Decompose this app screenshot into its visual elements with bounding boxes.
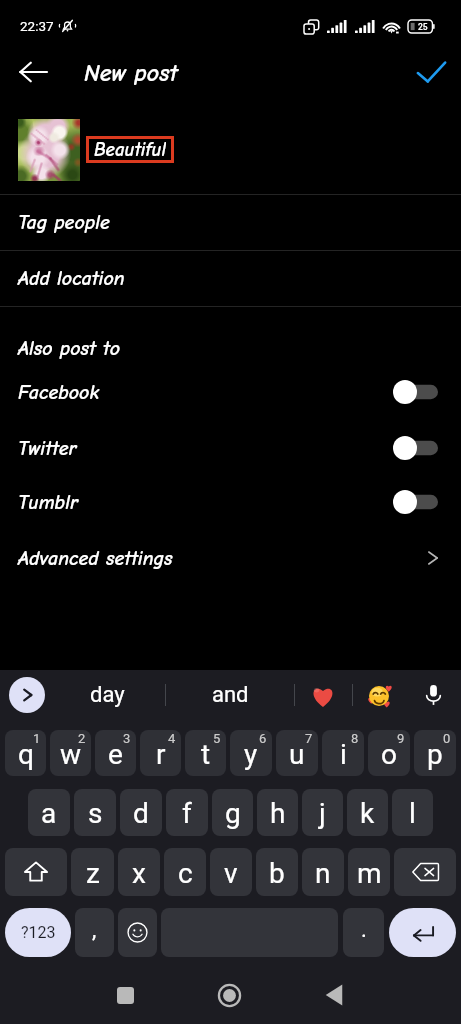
- staticText: day: [90, 682, 125, 708]
- staticText: Add location: [18, 267, 125, 290]
- button[interactable]: v: [210, 848, 252, 896]
- button[interactable]: Heart emoji: [304, 677, 341, 714]
- staticText: j: [319, 797, 326, 830]
- staticText: l: [409, 797, 416, 830]
- button[interactable]: j: [302, 789, 343, 836]
- staticText: i: [340, 738, 347, 771]
- staticText: 0: [443, 731, 451, 746]
- staticText: z: [86, 857, 100, 890]
- button[interactable]: i: [322, 730, 364, 776]
- button[interactable]: h: [257, 789, 298, 836]
- button[interactable]: Backspace: [394, 848, 456, 896]
- staticText: v: [224, 857, 238, 890]
- staticText: u: [289, 738, 305, 771]
- button[interactable]: ,: [75, 908, 114, 957]
- staticText: w: [60, 738, 82, 771]
- button[interactable]: Back: [11, 50, 55, 94]
- staticText: o: [381, 738, 397, 771]
- button[interactable]: p: [414, 730, 456, 776]
- button[interactable]: e: [95, 730, 136, 776]
- button[interactable]: n: [302, 848, 344, 896]
- staticText: Tumblr: [18, 491, 78, 514]
- button[interactable]: z: [71, 848, 114, 896]
- staticText: k: [360, 797, 375, 830]
- staticText: Beautiful: [94, 139, 166, 160]
- staticText: 22:37: [20, 18, 54, 34]
- button[interactable]: Recent apps: [85, 973, 165, 1017]
- staticText: 2: [78, 731, 86, 746]
- staticText: a: [41, 797, 57, 830]
- button[interactable]: Also post to: [0, 320, 461, 376]
- button[interactable]: c: [164, 848, 206, 896]
- staticText: 9: [397, 731, 405, 746]
- button[interactable]: a: [28, 789, 70, 836]
- button[interactable]: Beautiful: [89, 139, 171, 160]
- staticText: r: [156, 738, 166, 771]
- staticText: ,: [92, 917, 97, 943]
- button[interactable]: o: [368, 730, 410, 776]
- button[interactable]: Shift: [5, 848, 67, 896]
- button[interactable]: d: [120, 789, 162, 836]
- staticText: 5: [213, 731, 221, 746]
- staticText: 6: [259, 731, 267, 746]
- button[interactable]: r: [140, 730, 181, 776]
- button[interactable]: Share post: [409, 50, 453, 94]
- button[interactable]: u: [276, 730, 318, 776]
- button[interactable]: t: [185, 730, 226, 776]
- button[interactable]: x: [118, 848, 160, 896]
- button[interactable]: g: [212, 789, 253, 836]
- button[interactable]: Advanced settings: [0, 530, 461, 586]
- staticText: Tag people: [18, 211, 110, 234]
- button[interactable]: Tumblr: [0, 474, 461, 530]
- staticText: q: [18, 738, 34, 771]
- staticText: x: [132, 857, 146, 890]
- button[interactable]: l: [392, 789, 433, 836]
- staticText: f: [182, 797, 192, 830]
- button[interactable]: Home: [189, 973, 269, 1017]
- button[interactable]: y: [230, 730, 272, 776]
- button[interactable]: k: [347, 789, 388, 836]
- button[interactable]: ?123: [5, 908, 71, 957]
- button[interactable]: Back: [294, 973, 374, 1017]
- button[interactable]: b: [256, 848, 298, 896]
- staticText: 1: [33, 731, 41, 746]
- button[interactable]: Voice input: [415, 677, 451, 713]
- staticText: .: [361, 917, 367, 943]
- staticText: s: [88, 797, 103, 830]
- staticText: and: [212, 682, 249, 708]
- staticText: 3: [123, 731, 131, 746]
- staticText: y: [244, 738, 258, 771]
- button[interactable]: [18, 119, 80, 181]
- button[interactable]: Tag people: [0, 195, 461, 250]
- staticText: d: [133, 797, 149, 830]
- button[interactable]: More suggestions: [9, 677, 45, 713]
- staticText: 7: [305, 731, 313, 746]
- button[interactable]: day: [57, 670, 157, 720]
- staticText: Facebook: [18, 381, 100, 404]
- button[interactable]: .: [343, 908, 384, 957]
- button[interactable]: q: [5, 730, 46, 776]
- staticText: h: [270, 797, 286, 830]
- button[interactable]: f: [166, 789, 208, 836]
- staticText: n: [315, 857, 331, 890]
- button[interactable]: Emoji: [118, 908, 157, 957]
- button[interactable]: Twitter: [0, 420, 461, 476]
- button[interactable]: m: [348, 848, 390, 896]
- button[interactable]: Enter: [389, 908, 456, 957]
- staticText: Twitter: [18, 437, 77, 460]
- button[interactable]: Add location: [0, 251, 461, 306]
- button[interactable]: w: [50, 730, 91, 776]
- staticText: g: [225, 797, 241, 830]
- staticText: Advanced settings: [18, 547, 173, 570]
- button[interactable]: Smiley emoji: [361, 677, 398, 714]
- button[interactable]: and: [180, 670, 280, 720]
- staticText: ?123: [21, 923, 56, 942]
- staticText: New post: [84, 59, 178, 87]
- staticText: 8: [351, 731, 359, 746]
- button[interactable]: s: [74, 789, 116, 836]
- button[interactable]: Facebook: [0, 364, 461, 420]
- staticText: p: [427, 738, 443, 771]
- staticText: 25: [418, 22, 428, 32]
- staticText: b: [269, 857, 285, 890]
